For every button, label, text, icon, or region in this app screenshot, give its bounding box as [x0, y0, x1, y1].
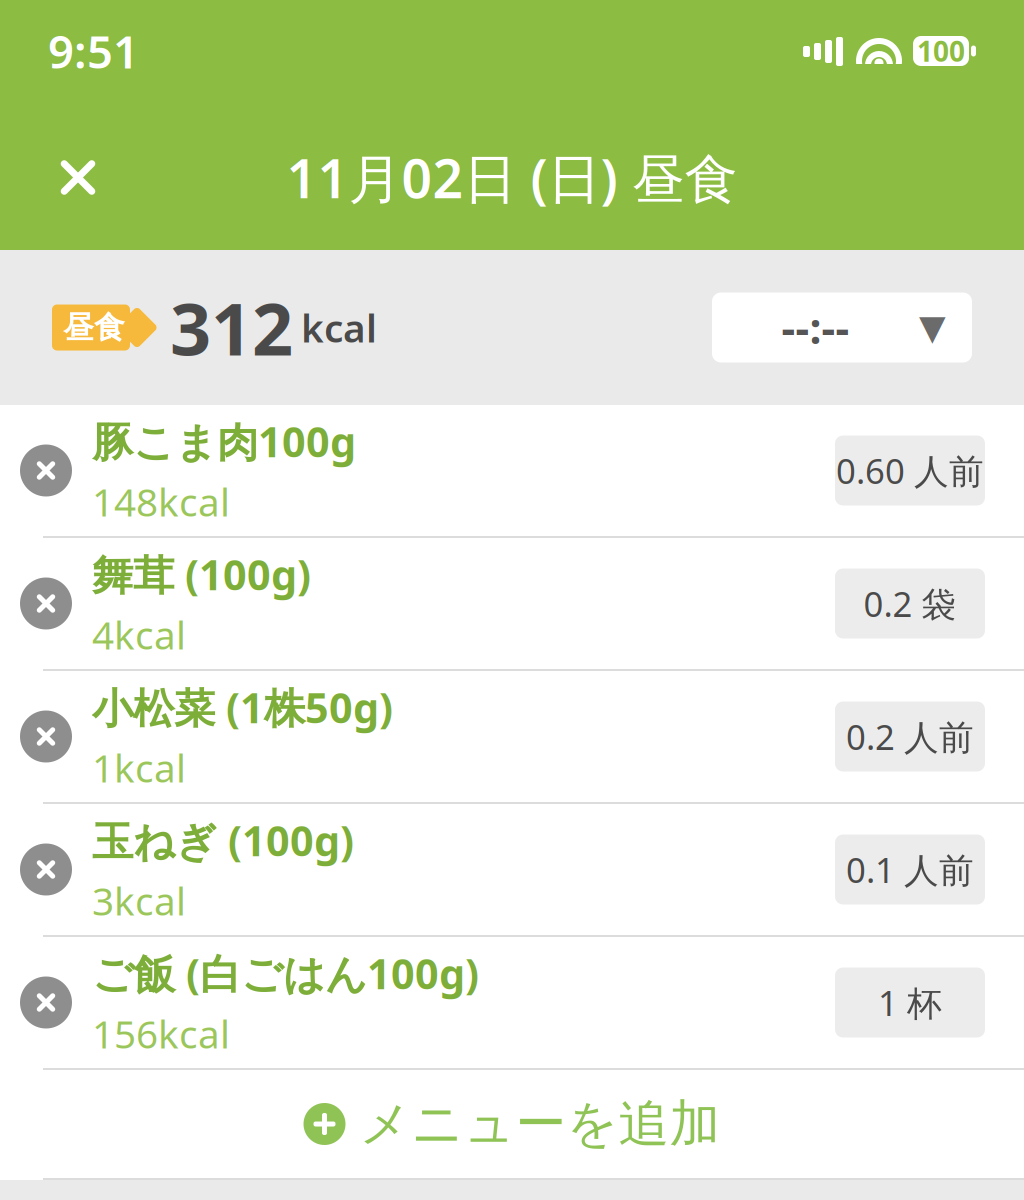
staticText: 11月02日 (日) 昼食 — [286, 142, 737, 213]
staticText: 0.2 袋 — [863, 580, 956, 626]
staticText: 100 — [917, 32, 965, 70]
staticText: 156kcal — [92, 1008, 230, 1059]
button[interactable]: 削除 — [0, 804, 92, 935]
staticText: 0.2 人前 — [846, 713, 974, 759]
button[interactable]: 豚こま肉100g — [0, 405, 1024, 536]
staticText: 4kcal — [92, 609, 186, 660]
button[interactable]: 削除 — [0, 671, 92, 802]
button[interactable]: 小松菜 (1株50g) — [0, 671, 1024, 802]
staticText: kcal — [301, 302, 377, 353]
staticText: 小松菜 (1株50g) — [92, 680, 393, 735]
button[interactable]: ご飯 (白ごはん100g) — [0, 937, 1024, 1068]
button[interactable]: 舞茸 (100g) — [0, 538, 1024, 669]
staticText: --:-- — [781, 299, 849, 356]
staticText: ご飯 (白ごはん100g) — [92, 946, 479, 1001]
staticText: 0.1 人前 — [846, 846, 974, 892]
staticText: 9:51 — [48, 21, 139, 81]
button[interactable]: 削除 — [0, 405, 92, 536]
staticText: 舞茸 (100g) — [92, 547, 311, 602]
staticText: 3kcal — [92, 875, 186, 926]
staticText: 312 — [170, 280, 293, 375]
button[interactable]: 削除 — [0, 538, 92, 669]
staticText: ▼ — [919, 308, 946, 347]
staticText: 豚こま肉100g — [92, 414, 356, 469]
staticText: 1kcal — [92, 742, 186, 793]
button[interactable]: 閉じる — [28, 129, 128, 225]
staticText: メニューを追加 — [359, 1093, 720, 1155]
staticText: 玉ねぎ (100g) — [92, 813, 354, 868]
staticText: 0.60 人前 — [836, 447, 984, 493]
staticText: 昼食 — [63, 309, 125, 346]
staticText: 1 杯 — [878, 979, 942, 1025]
button[interactable]: 削除 — [0, 937, 92, 1068]
button[interactable]: 玉ねぎ (100g) — [0, 804, 1024, 935]
staticText: 148kcal — [92, 476, 230, 527]
button[interactable]: メニューを追加 — [0, 1070, 1024, 1178]
button[interactable]: --:-- — [712, 292, 972, 362]
